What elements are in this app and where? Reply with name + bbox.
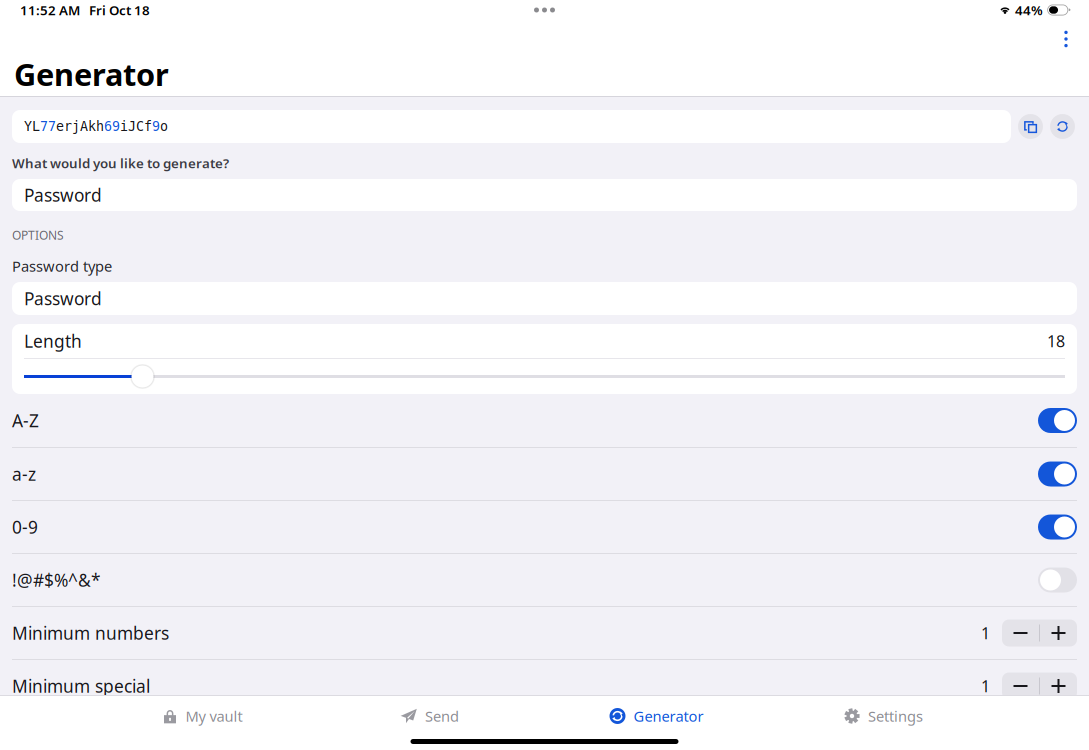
staticText: 9 bbox=[152, 119, 160, 134]
staticText: Generator bbox=[633, 706, 703, 726]
staticText: Fri Oct 18 bbox=[89, 1, 150, 19]
button[interactable]: Minimum numbers bbox=[0, 607, 1089, 659]
button[interactable]: Increase bbox=[1040, 619, 1077, 646]
staticText: Settings bbox=[868, 706, 923, 726]
staticText: Minimum numbers bbox=[12, 621, 169, 644]
staticText: YL bbox=[24, 119, 40, 134]
staticText: o bbox=[160, 119, 168, 134]
staticText: 1 bbox=[981, 675, 990, 697]
staticText: 77 bbox=[40, 119, 56, 134]
staticText: 69 bbox=[104, 119, 120, 134]
staticText: a-z bbox=[12, 462, 36, 485]
staticText: Minimum special bbox=[12, 674, 150, 697]
button[interactable]: Copy password bbox=[1018, 114, 1043, 139]
button[interactable]: A-Z bbox=[0, 394, 1089, 446]
button[interactable]: a-z bbox=[0, 448, 1089, 500]
staticText: 11:52 AM bbox=[20, 1, 80, 19]
button[interactable]: Increase bbox=[1040, 672, 1077, 699]
button[interactable]: Decrease bbox=[1002, 672, 1039, 699]
staticText: Length bbox=[24, 329, 82, 352]
button[interactable]: My vault bbox=[89, 696, 316, 736]
button[interactable]: Decrease bbox=[1002, 619, 1039, 646]
staticText: Password type bbox=[12, 256, 112, 276]
button[interactable]: Regenerate password bbox=[1050, 114, 1075, 139]
staticText: iJCf bbox=[120, 119, 152, 134]
button[interactable]: Send bbox=[316, 696, 543, 736]
staticText: erjAkh bbox=[56, 119, 104, 134]
staticText: 1 bbox=[981, 622, 990, 644]
button[interactable]: Generator bbox=[543, 696, 770, 736]
button[interactable]: More options bbox=[1048, 24, 1084, 54]
staticText: Generator bbox=[14, 54, 169, 94]
staticText: 44% bbox=[1015, 1, 1043, 19]
button[interactable]: 0-9 bbox=[0, 501, 1089, 553]
staticText: A-Z bbox=[12, 409, 39, 432]
staticText: Send bbox=[425, 706, 459, 726]
staticText: 0-9 bbox=[12, 515, 38, 538]
button[interactable]: Minimum special bbox=[0, 660, 1089, 712]
staticText: Password bbox=[24, 287, 102, 310]
staticText: OPTIONS bbox=[12, 227, 64, 243]
button[interactable]: Password bbox=[0, 282, 1089, 315]
staticText: What would you like to generate? bbox=[12, 154, 229, 172]
staticText: My vault bbox=[185, 706, 242, 726]
button[interactable]: Password bbox=[0, 179, 1089, 211]
button[interactable]: Settings bbox=[770, 696, 997, 736]
staticText: 18 bbox=[1047, 330, 1065, 352]
button[interactable]: !@#$%^&* bbox=[0, 554, 1089, 606]
staticText: !@#$%^&* bbox=[12, 568, 101, 591]
staticText: Password bbox=[24, 183, 102, 206]
